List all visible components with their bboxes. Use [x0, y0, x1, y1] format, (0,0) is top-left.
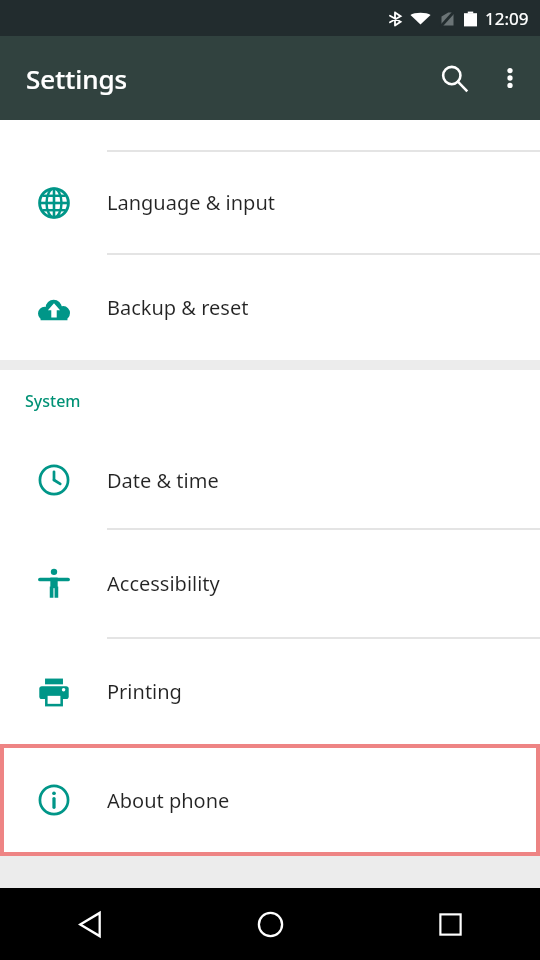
- staticText: System: [25, 390, 81, 412]
- staticText: Printing: [107, 678, 182, 705]
- staticText: Accessibility: [107, 570, 220, 597]
- button[interactable]: Home: [180, 888, 360, 960]
- button[interactable]: Search: [425, 49, 483, 107]
- staticText: Date & time: [107, 467, 219, 494]
- button[interactable]: Back: [0, 888, 180, 960]
- button[interactable]: Language & input: [0, 152, 540, 253]
- button[interactable]: Accessibility: [0, 530, 540, 637]
- button[interactable]: About phone: [0, 744, 540, 856]
- button[interactable]: More options: [483, 51, 537, 105]
- button[interactable]: Backup & reset: [0, 255, 540, 360]
- staticText: Settings: [26, 61, 128, 96]
- staticText: 12:09: [485, 7, 529, 30]
- staticText: About phone: [107, 787, 230, 814]
- staticText: Backup & reset: [107, 294, 249, 321]
- staticText: Language & input: [107, 189, 275, 216]
- button[interactable]: Date & time: [0, 432, 540, 528]
- button[interactable]: Recent apps: [360, 888, 540, 960]
- button[interactable]: Printing: [0, 639, 540, 744]
